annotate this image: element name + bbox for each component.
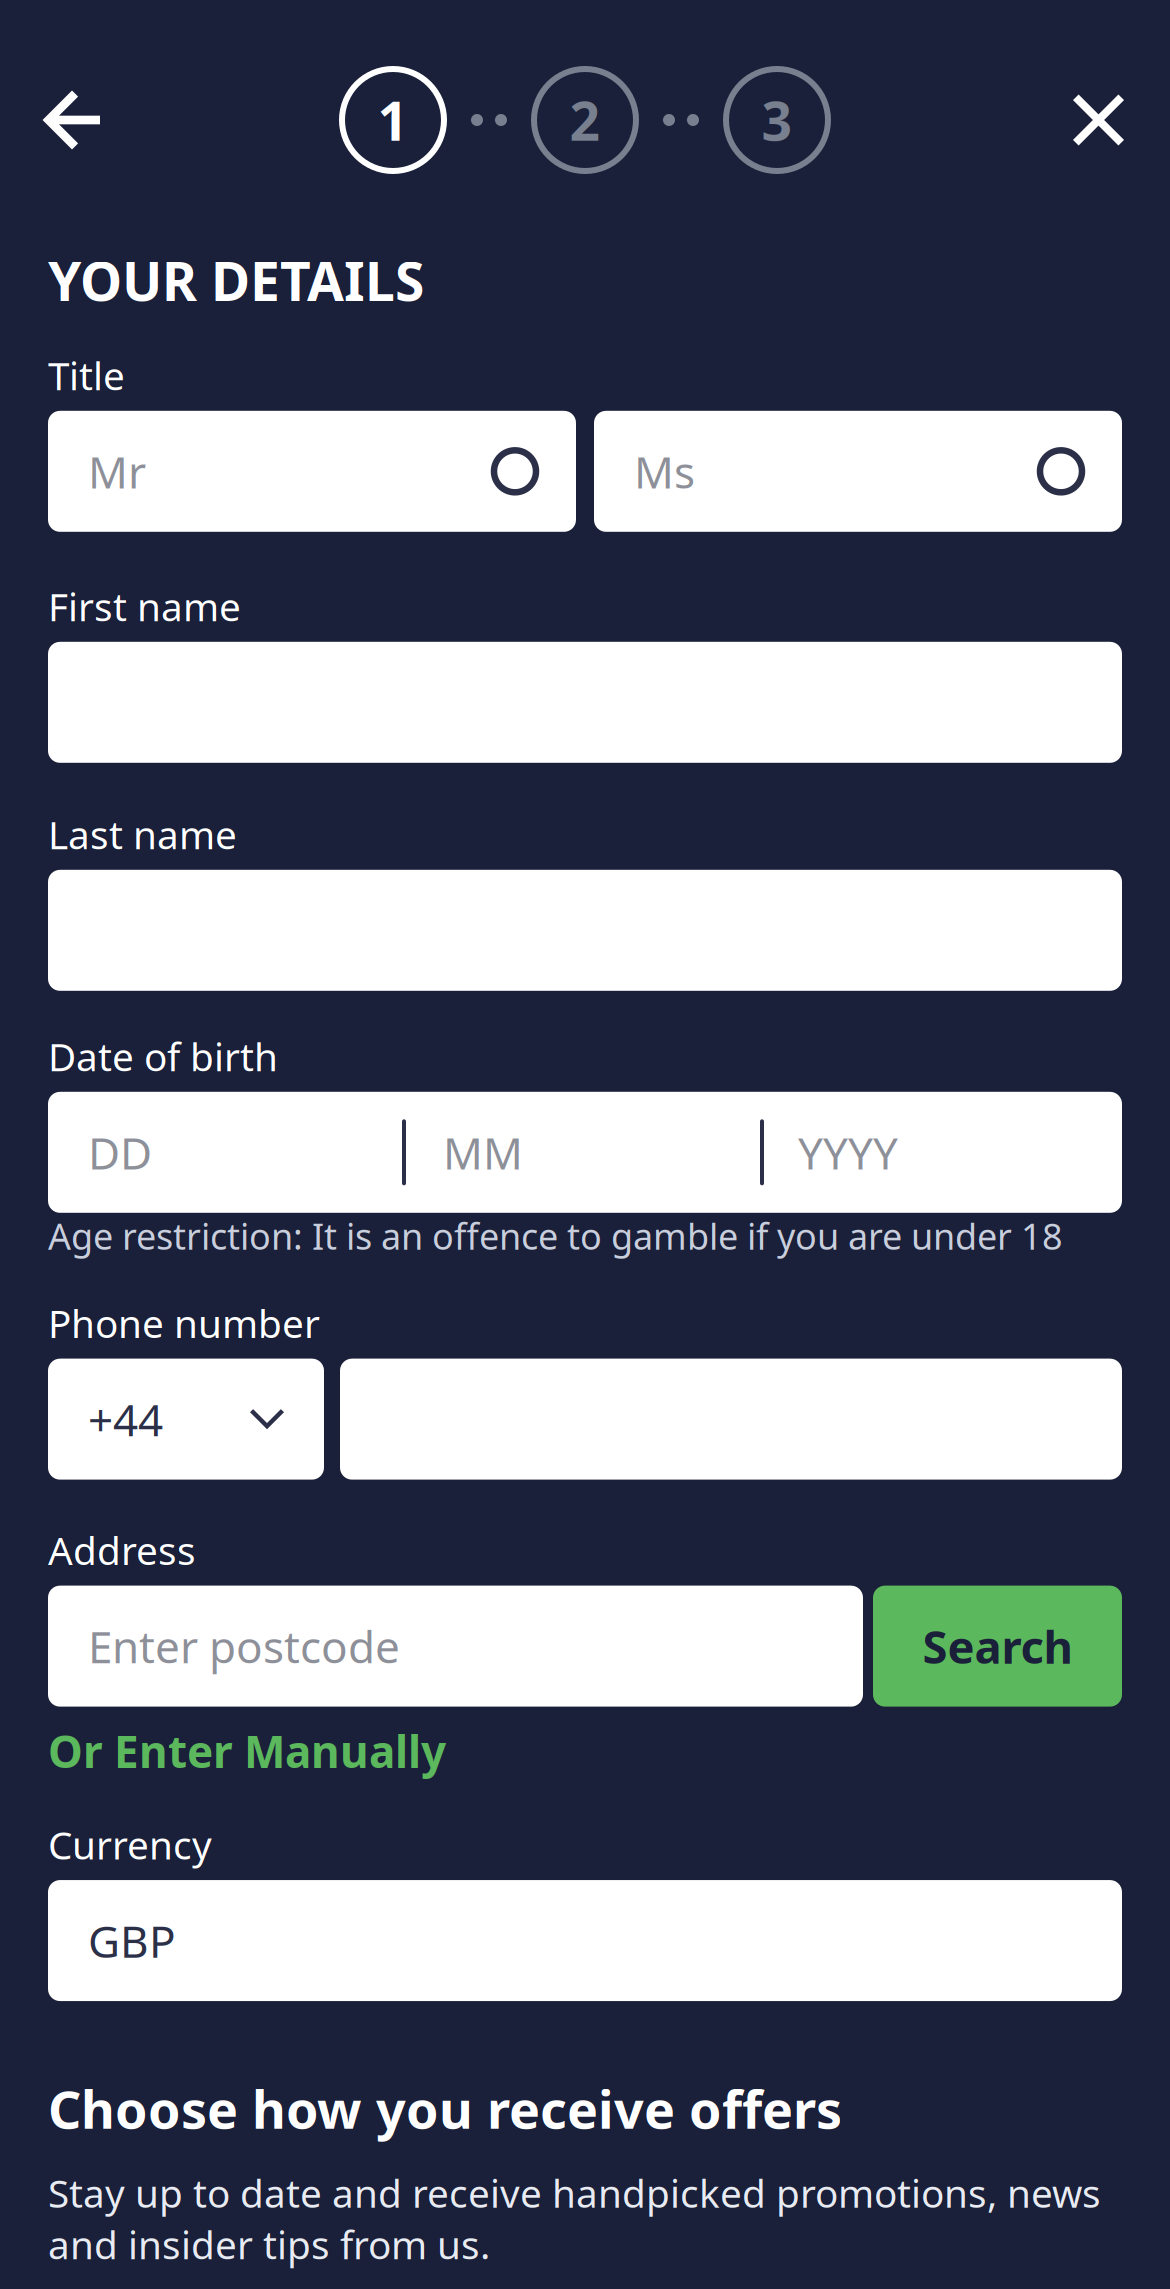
staticText: Mr <box>88 442 146 500</box>
staticText: Phone number <box>48 1297 320 1349</box>
staticText: Date of birth <box>48 1030 278 1082</box>
staticText: YYYY <box>798 1123 898 1181</box>
staticText: 3 <box>761 85 792 155</box>
staticText: and insider tips from us. <box>48 2218 490 2270</box>
button[interactable]: +44 <box>48 1359 324 1480</box>
button[interactable]: Search <box>873 1586 1122 1707</box>
staticText: +44 <box>88 1390 163 1448</box>
staticText: Search <box>922 1616 1072 1676</box>
button[interactable]: Back <box>0 66 128 174</box>
staticText: Title <box>48 349 125 401</box>
staticText: Stay up to date and receive handpicked p… <box>48 2167 1101 2218</box>
staticText: Ms <box>634 442 695 500</box>
staticText: Choose how you receive offers <box>48 2074 842 2143</box>
staticText: First name <box>48 580 241 632</box>
button[interactable]: Ms <box>594 411 1122 532</box>
button[interactable]: Close <box>1049 66 1170 174</box>
staticText: Or Enter Manually <box>48 1722 446 1780</box>
staticText: DD <box>88 1123 152 1181</box>
button[interactable]: Mr <box>48 411 576 532</box>
button[interactable]: Or Enter Manually <box>48 1722 446 1780</box>
staticText: Enter postcode <box>88 1617 400 1675</box>
staticText: Age restriction: It is an offence to gam… <box>48 1212 1063 1260</box>
staticText: Address <box>48 1524 196 1576</box>
staticText: 1 <box>377 85 408 155</box>
staticText: GBP <box>88 1911 176 1970</box>
button[interactable]: GBP <box>48 1880 1122 2001</box>
staticText: MM <box>443 1123 523 1181</box>
staticText: 2 <box>569 85 600 155</box>
staticText: Last name <box>48 808 237 860</box>
staticText: YOUR DETAILS <box>48 245 424 316</box>
staticText: Currency <box>48 1819 212 1870</box>
